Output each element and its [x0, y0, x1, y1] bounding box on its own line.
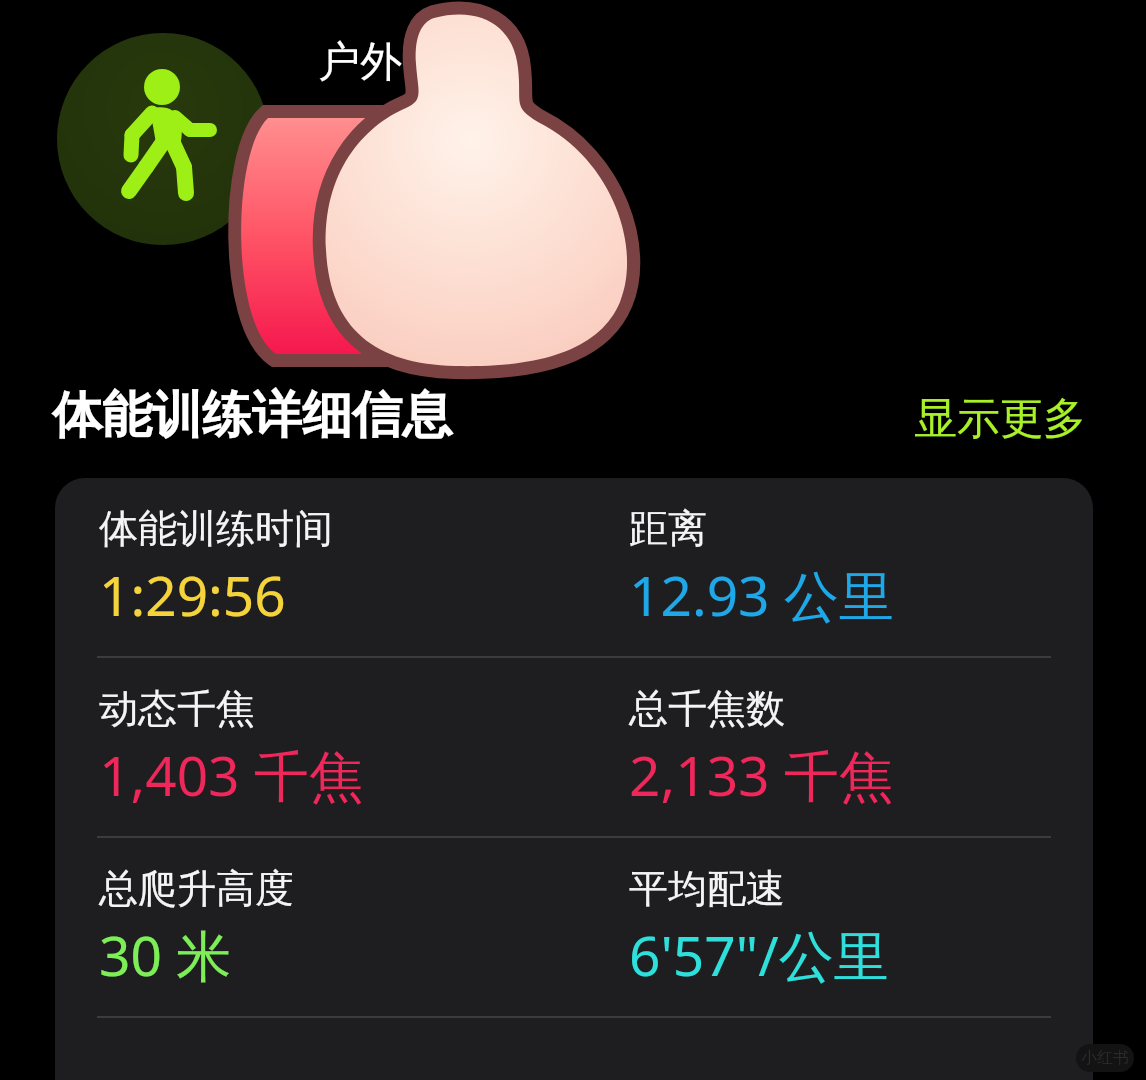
staticText: 12.93 公里 [629, 557, 894, 632]
staticText: 6'57"/公里 [629, 917, 889, 992]
staticText: 2,133 千焦 [629, 737, 894, 812]
button[interactable]: 体能训练详细信息 [52, 384, 452, 447]
staticText: 距离 [629, 504, 707, 553]
staticText: 体能训练详细信息 [52, 384, 452, 447]
staticText: 动态千焦 [99, 684, 255, 733]
staticText: 30 米 [99, 917, 232, 992]
staticText: 1,403 千焦 [99, 737, 364, 812]
staticText: 总爬升高度 [99, 864, 294, 913]
staticText: 1:29:56 [99, 557, 286, 632]
staticText: 小红书 [1081, 1048, 1129, 1068]
other: Outdoor walk workout [0, 0, 1146, 378]
staticText: 显示更多 [914, 392, 1086, 446]
staticText: 平均配速 [629, 864, 785, 913]
staticText: 体能训练时间 [99, 504, 333, 553]
button[interactable]: 体能训练时间 [99, 504, 629, 632]
button[interactable]: 总千焦数 [629, 684, 1089, 812]
staticText: 户外 [318, 36, 402, 89]
button[interactable]: 动态千焦 [99, 684, 629, 812]
staticText: 总千焦数 [629, 684, 785, 733]
button[interactable]: 显示更多 [914, 392, 1086, 446]
button[interactable]: 距离 [629, 504, 1089, 632]
button[interactable]: 平均配速 [629, 864, 1089, 992]
button[interactable]: 总爬升高度 [99, 864, 629, 992]
